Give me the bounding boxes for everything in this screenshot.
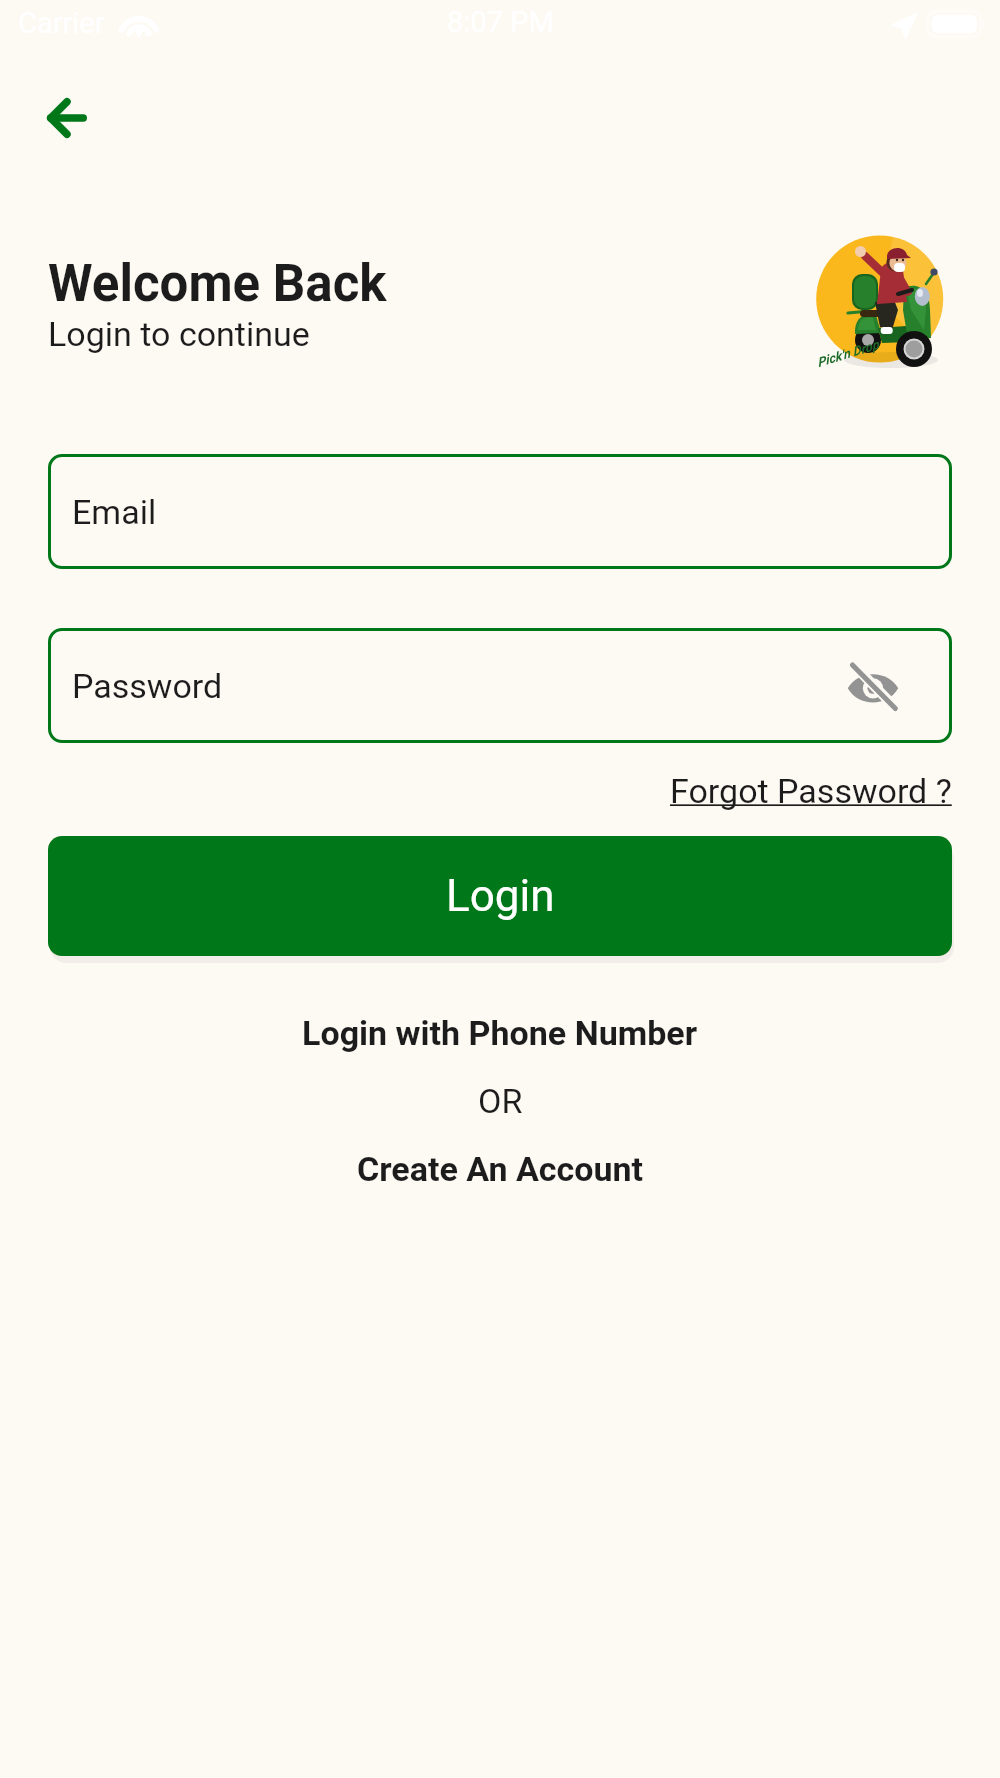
staticText: OR [478, 1081, 523, 1121]
staticText: Create An Account [357, 1149, 644, 1189]
staticText: Pick'n Drop [815, 337, 881, 370]
staticText: Login to continue [48, 314, 310, 354]
staticText: Email [72, 492, 157, 532]
staticText: Carrier [18, 6, 105, 40]
button[interactable]: Password [48, 628, 952, 743]
staticText: 8:07 PM [447, 5, 554, 39]
button[interactable]: Email [48, 454, 952, 569]
staticText: Login with Phone Number [302, 1013, 698, 1053]
staticText: Login [446, 870, 555, 922]
button[interactable]: Login [48, 836, 952, 956]
button[interactable]: Show password [831, 644, 915, 728]
button[interactable]: Create An Account [347, 1145, 654, 1193]
button[interactable]: Login with Phone Number [292, 1009, 708, 1057]
staticText: Forgot Password ? [670, 771, 952, 811]
button[interactable]: Forgot Password ? [664, 765, 958, 817]
staticText: Welcome Back [48, 254, 387, 314]
staticText: Password [72, 666, 223, 706]
button[interactable]: Back [19, 70, 115, 166]
